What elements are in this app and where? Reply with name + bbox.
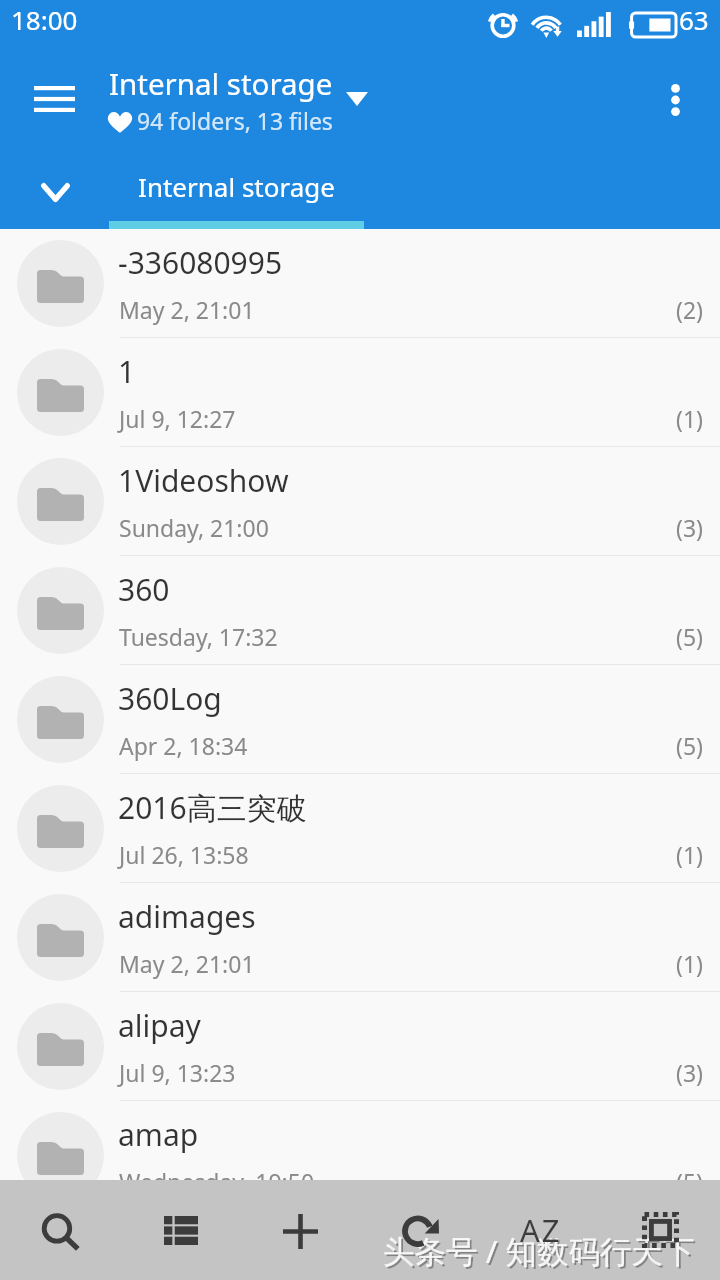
staticText: 94 folders, 13 files <box>137 105 333 136</box>
staticText: 63 <box>679 2 709 37</box>
button[interactable]: AZ <box>506 1195 576 1265</box>
button[interactable]: -336080995 <box>0 229 720 338</box>
staticText: adimages <box>118 896 256 937</box>
staticText: 360Log <box>118 678 222 719</box>
button[interactable]: Search <box>27 1199 97 1268</box>
staticText: 1Videoshow <box>118 460 289 501</box>
button[interactable]: 360Log <box>0 665 720 774</box>
button[interactable]: Add <box>266 1197 335 1266</box>
staticText: (1) <box>676 948 703 979</box>
button[interactable]: Expand tabs <box>22 159 88 225</box>
button[interactable]: Open navigation drawer <box>20 65 88 133</box>
staticText: (5) <box>676 730 703 761</box>
button[interactable]: Internal storage <box>109 160 364 229</box>
button[interactable]: Select all <box>625 1195 696 1265</box>
button[interactable]: amap <box>0 1101 720 1210</box>
staticText: -336080995 <box>118 242 283 283</box>
staticText: (1) <box>676 839 703 870</box>
staticText: (1) <box>676 403 703 434</box>
staticText: Internal storage <box>138 169 335 204</box>
staticText: alipay <box>118 1005 201 1046</box>
staticText: Jul 9, 13:23 <box>119 1057 236 1088</box>
button[interactable]: List view <box>147 1199 215 1262</box>
staticText: amap <box>118 1114 199 1155</box>
staticText: 头条号 / 知数码行天下 <box>383 1229 695 1272</box>
button[interactable]: More options <box>641 66 709 134</box>
staticText: (5) <box>676 621 703 652</box>
staticText: Sunday, 21:00 <box>119 512 269 543</box>
staticText: 2016高三突破 <box>118 787 307 828</box>
staticText: May 2, 21:01 <box>119 948 255 979</box>
button[interactable]: 1Videoshow <box>0 447 720 556</box>
staticText: Jul 26, 13:58 <box>119 839 249 870</box>
button[interactable]: Internal storage <box>103 58 377 106</box>
button[interactable]: 360 <box>0 556 720 665</box>
staticText: 360 <box>118 569 170 610</box>
staticText: AZ <box>520 1209 562 1251</box>
staticText: (5) <box>676 1166 703 1197</box>
button[interactable]: 1 <box>0 338 720 447</box>
staticText: 1 <box>118 351 136 392</box>
staticText: May 2, 21:01 <box>119 294 255 325</box>
button[interactable]: 2016高三突破 <box>0 774 720 883</box>
staticText: Jul 9, 12:27 <box>119 403 236 434</box>
button[interactable]: adimages <box>0 883 720 992</box>
staticText: Tuesday, 17:32 <box>119 621 278 652</box>
staticText: Apr 2, 18:34 <box>119 730 248 761</box>
staticText: (3) <box>676 1057 703 1088</box>
staticText: 18:00 <box>11 2 78 37</box>
staticText: (3) <box>676 512 703 543</box>
button[interactable]: Refresh <box>384 1193 458 1267</box>
staticText: 头条号 / 知数码行天下 <box>385 1231 697 1274</box>
staticText: Wednesday, 19:50 <box>119 1166 315 1197</box>
staticText: (2) <box>676 294 703 325</box>
staticText: Internal storage <box>109 63 333 103</box>
button[interactable]: alipay <box>0 992 720 1101</box>
